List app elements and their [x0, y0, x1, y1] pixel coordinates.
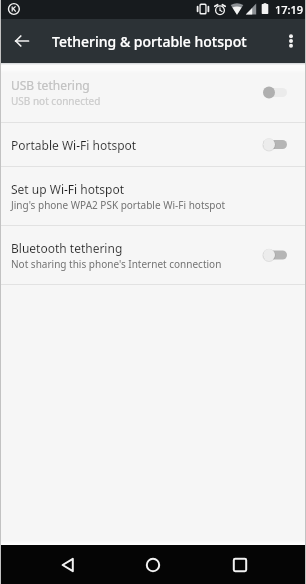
staticText: Tethering & portable hotspot [52, 32, 247, 51]
button[interactable]: Bluetooth tethering switch [262, 226, 306, 284]
button[interactable]: Recent apps [217, 545, 263, 584]
button[interactable]: Portable Wi-Fi hotspot switch [262, 123, 306, 166]
button[interactable]: Bluetooth tethering [0, 226, 306, 284]
staticText: 17:19 [275, 2, 304, 17]
button[interactable]: USB tethering [0, 63, 306, 122]
button[interactable]: USB tethering switch [262, 63, 306, 122]
staticText: USB tethering [11, 77, 90, 93]
staticText: Portable Wi-Fi hotspot [11, 137, 137, 153]
button[interactable]: Back [45, 545, 91, 584]
staticText: Jing's phone WPA2 PSK portable Wi-Fi hot… [11, 198, 226, 212]
staticText: USB not connected [11, 94, 101, 108]
button[interactable]: Navigate up [0, 19, 44, 63]
staticText: Not sharing this phone's Internet connec… [11, 257, 222, 271]
staticText: Set up Wi-Fi hotspot [11, 181, 125, 197]
button[interactable]: Home [130, 545, 176, 584]
button[interactable]: Set up Wi-Fi hotspot [0, 167, 306, 225]
staticText: Bluetooth tethering [11, 240, 123, 256]
button[interactable]: More options [262, 19, 306, 63]
button[interactable]: Portable Wi-Fi hotspot [0, 123, 306, 166]
